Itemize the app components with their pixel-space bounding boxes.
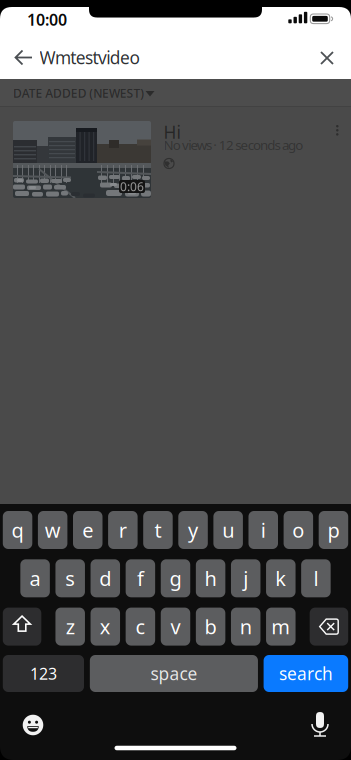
button[interactable]: p bbox=[319, 511, 348, 549]
button[interactable]: Shift bbox=[3, 608, 41, 646]
button[interactable]: j bbox=[231, 559, 260, 597]
button[interactable]: y bbox=[178, 511, 208, 549]
button[interactable]: space bbox=[90, 655, 258, 692]
staticText: m bbox=[271, 613, 290, 640]
button[interactable]: w bbox=[38, 511, 67, 549]
staticText: 123 bbox=[30, 663, 57, 684]
staticText: s bbox=[65, 565, 75, 592]
button[interactable]: d bbox=[91, 559, 120, 597]
button[interactable]: u bbox=[213, 511, 243, 549]
button[interactable]: DATE ADDED (NEWEST) bbox=[0, 79, 230, 107]
staticText: Wmtestvideo bbox=[39, 46, 139, 69]
button[interactable]: More options bbox=[324, 119, 350, 143]
staticText: h bbox=[205, 565, 217, 592]
button[interactable]: h bbox=[196, 559, 225, 597]
button[interactable]: Dictate bbox=[307, 711, 333, 737]
staticText: j bbox=[243, 565, 248, 592]
staticText: k bbox=[275, 565, 286, 592]
button[interactable]: q bbox=[3, 511, 32, 549]
button[interactable]: s bbox=[55, 559, 85, 597]
staticText: i bbox=[261, 517, 266, 543]
button[interactable]: Clear search bbox=[314, 45, 340, 71]
staticText: o bbox=[292, 517, 304, 543]
button[interactable]: 123 bbox=[3, 655, 84, 692]
button[interactable]: v bbox=[161, 608, 190, 646]
staticText: DATE ADDED (NEWEST) bbox=[13, 85, 144, 101]
staticText: b bbox=[205, 613, 217, 640]
button[interactable]: x bbox=[91, 608, 120, 646]
staticText: d bbox=[99, 565, 111, 592]
button[interactable]: g bbox=[161, 559, 190, 597]
staticText: e bbox=[82, 517, 93, 543]
staticText: r bbox=[119, 517, 127, 543]
button[interactable]: m bbox=[266, 608, 296, 646]
button[interactable]: r bbox=[108, 511, 138, 549]
staticText: g bbox=[169, 565, 181, 592]
staticText: a bbox=[30, 565, 41, 592]
button[interactable]: z bbox=[55, 608, 85, 646]
button[interactable]: n bbox=[231, 608, 260, 646]
button[interactable]: Delete bbox=[310, 608, 348, 646]
button[interactable]: k bbox=[266, 559, 296, 597]
button[interactable]: 0:06 bbox=[0, 107, 351, 207]
button[interactable]: e bbox=[73, 511, 102, 549]
staticText: 10:00 bbox=[27, 9, 67, 30]
button[interactable]: l bbox=[301, 559, 331, 597]
staticText: u bbox=[222, 517, 234, 543]
staticText: space bbox=[150, 662, 197, 685]
staticText: c bbox=[135, 613, 145, 640]
button[interactable]: Back bbox=[11, 44, 37, 70]
staticText: x bbox=[100, 613, 111, 640]
staticText: No views · 12 seconds ago bbox=[163, 136, 303, 154]
button[interactable]: t bbox=[143, 511, 173, 549]
staticText: l bbox=[313, 565, 318, 592]
button[interactable]: c bbox=[126, 608, 155, 646]
staticText: z bbox=[66, 613, 75, 640]
staticText: w bbox=[45, 517, 61, 543]
staticText: q bbox=[12, 517, 24, 543]
staticText: t bbox=[154, 517, 161, 543]
staticText: 0:06 bbox=[120, 178, 144, 194]
button[interactable]: f bbox=[126, 559, 155, 597]
staticText: n bbox=[240, 613, 252, 640]
staticText: p bbox=[327, 517, 339, 543]
button[interactable]: a bbox=[20, 559, 50, 597]
staticText: y bbox=[188, 517, 198, 543]
button[interactable]: Emoji bbox=[20, 712, 46, 738]
staticText: Hi bbox=[163, 121, 180, 144]
button[interactable]: i bbox=[248, 511, 278, 549]
button[interactable]: search bbox=[264, 655, 348, 692]
staticText: search bbox=[279, 662, 333, 685]
button[interactable]: b bbox=[196, 608, 225, 646]
staticText: v bbox=[170, 613, 180, 640]
staticText: f bbox=[137, 565, 144, 592]
button[interactable]: o bbox=[284, 511, 313, 549]
